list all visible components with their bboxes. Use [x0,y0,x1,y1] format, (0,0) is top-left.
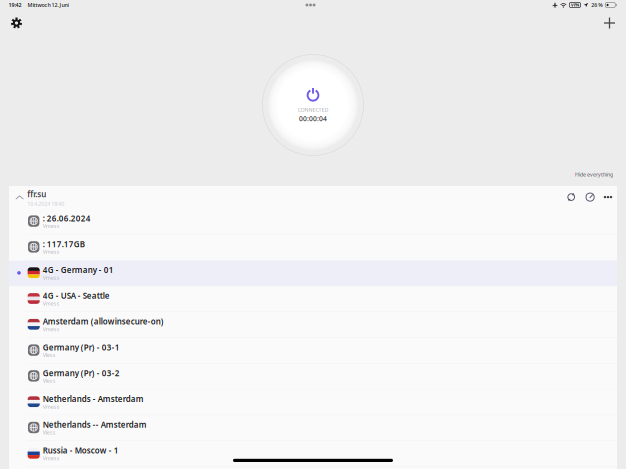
staticText: VPN [571,2,579,8]
staticText: Mittwoch 12. Juni [27,1,68,9]
staticText: Vless [43,351,56,358]
button[interactable]: Amsterdam (allowinsecure-on) [9,312,617,338]
button[interactable]: Hide everything [575,171,613,178]
staticText: Amsterdam (allowinsecure-on) [43,316,164,327]
button[interactable]: : 117.17GB [9,235,617,261]
button[interactable]: More options [602,190,614,204]
staticText: : 117.17GB [43,239,85,249]
button[interactable]: Collapse subscription [11,188,29,206]
button[interactable]: Add configuration [597,10,622,35]
button[interactable]: Settings [4,10,29,35]
button[interactable]: Netherlands - Amsterdam [9,390,617,415]
button[interactable]: 4G - Germany - 01 [9,261,617,286]
button[interactable]: Germany (Pr) - 03-2 [9,364,617,390]
staticText: ffr.su [27,189,46,199]
staticText: Vmess [43,403,60,410]
staticText: 26 % [591,1,603,9]
button[interactable]: ffr.su [27,189,64,207]
button[interactable]: Russia - Moscow - 1 [9,441,617,467]
button[interactable]: Refresh subscription [564,190,578,204]
staticText: CONNECTED [297,106,328,113]
staticText: Germany (Pr) - 03-2 [43,368,120,378]
staticText: Vmess [43,300,60,307]
staticText: Germany (Pr) - 03-1 [43,342,120,353]
staticText: Vmess [43,248,60,255]
staticText: Vless [43,377,56,384]
staticText: Vmess [43,222,60,229]
button[interactable]: Disconnect VPN [262,54,364,156]
staticText: 10.4.2024 18:40 [27,200,64,207]
button[interactable]: : 26.06.2024 [9,209,617,235]
button[interactable]: Netherlands -- Amsterdam [9,415,617,441]
staticText: Vmess [43,326,60,333]
staticText: 4G - USA - Seattle [43,290,110,301]
staticText: 19:42 [8,1,21,9]
staticText: : 26.06.2024 [43,213,91,224]
staticText: Vless [43,429,56,436]
button[interactable]: Germany (Pr) - 03-1 [9,338,617,364]
staticText: Vmess [43,274,60,281]
staticText: Netherlands - Amsterdam [43,394,144,404]
button[interactable]: 4G - USA - Seattle [9,286,617,312]
staticText: 4G - Germany - 01 [43,265,114,275]
staticText: Netherlands -- Amsterdam [43,419,147,430]
staticText: Hide everything [575,171,613,178]
staticText: 00:00:04 [299,114,327,123]
staticText: Vmess [43,455,60,462]
staticText: Russia - Moscow - 1 [43,445,119,456]
button[interactable]: Speed test [583,190,597,204]
